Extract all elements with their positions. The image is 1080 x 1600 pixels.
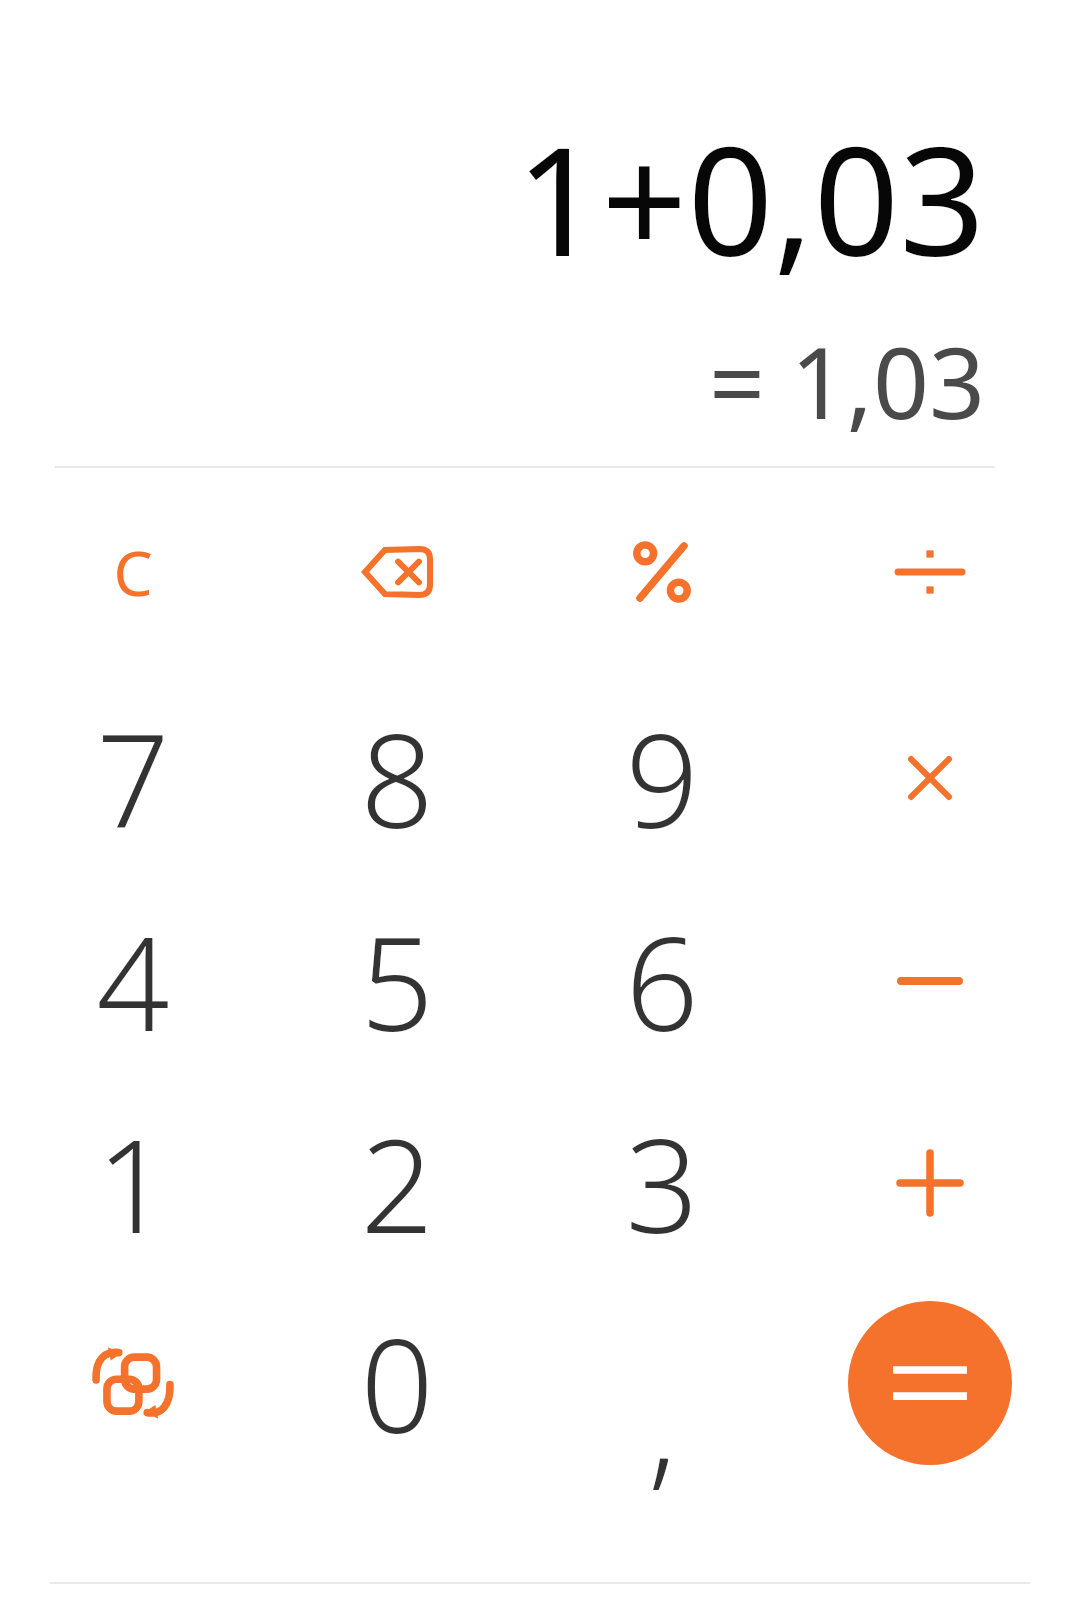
button[interactable]: 0 bbox=[297, 1283, 497, 1483]
staticText: 3 bbox=[625, 1096, 699, 1270]
button[interactable]: 5 bbox=[297, 881, 497, 1081]
staticText: , bbox=[648, 1336, 677, 1510]
button[interactable]: Backspace bbox=[297, 472, 497, 672]
button[interactable]: Convert units bbox=[33, 1283, 233, 1483]
button[interactable]: 7 bbox=[33, 678, 233, 878]
button[interactable]: 4 bbox=[33, 881, 233, 1081]
button[interactable]: Plus bbox=[830, 1083, 1030, 1283]
staticText: 1+0,03 bbox=[515, 96, 985, 300]
staticText: C bbox=[113, 530, 153, 614]
staticText: 7 bbox=[96, 691, 170, 865]
staticText: 6 bbox=[625, 894, 699, 1068]
button[interactable]: 6 bbox=[562, 881, 762, 1081]
staticText: 5 bbox=[360, 894, 434, 1068]
staticText: 8 bbox=[360, 691, 434, 865]
button[interactable]: Clear bbox=[33, 472, 233, 672]
staticText: 9 bbox=[625, 691, 699, 865]
staticText: 4 bbox=[96, 894, 170, 1068]
staticText: 2 bbox=[360, 1096, 434, 1270]
staticText: = 1,03 bbox=[709, 314, 985, 447]
button[interactable]: 3 bbox=[562, 1083, 762, 1283]
button[interactable]: 1 bbox=[33, 1083, 233, 1283]
button[interactable]: Minus bbox=[830, 881, 1030, 1081]
button[interactable]: 2 bbox=[297, 1083, 497, 1283]
button[interactable]: Percent bbox=[562, 472, 762, 672]
button[interactable]: , bbox=[562, 1283, 762, 1483]
button[interactable]: 9 bbox=[562, 678, 762, 878]
button[interactable]: 8 bbox=[297, 678, 497, 878]
staticText: 1 bbox=[96, 1096, 170, 1270]
button[interactable]: Multiply bbox=[830, 678, 1030, 878]
button[interactable]: Divide bbox=[830, 472, 1030, 672]
staticText: 0 bbox=[360, 1296, 434, 1470]
button[interactable]: Equals bbox=[848, 1301, 1012, 1465]
